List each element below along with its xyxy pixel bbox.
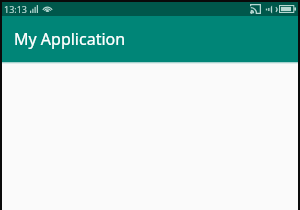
other: Battery	[279, 5, 296, 13]
staticText: My Application	[14, 28, 126, 50]
other: Cast screen	[250, 4, 261, 14]
staticText: 13:13	[4, 3, 28, 15]
button[interactable]: My Application	[2, 16, 298, 62]
other: Sound off	[266, 5, 275, 14]
